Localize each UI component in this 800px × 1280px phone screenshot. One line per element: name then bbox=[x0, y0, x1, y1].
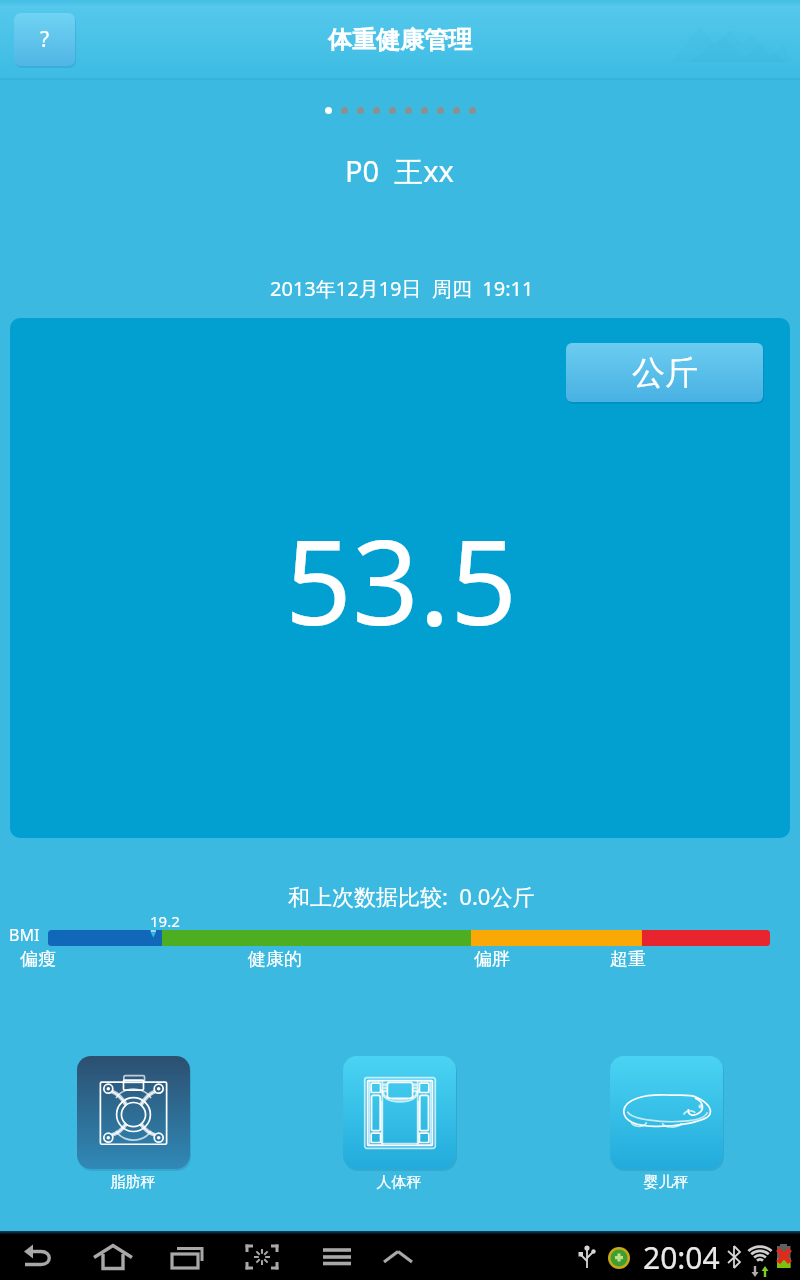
staticText: 健康的 bbox=[248, 948, 302, 971]
button[interactable]: Page 5 bbox=[389, 107, 396, 114]
staticText: BMI bbox=[9, 924, 40, 946]
staticText: 脂肪秤 bbox=[73, 1173, 193, 1192]
staticText: ? bbox=[40, 25, 50, 54]
button[interactable]: Page 3 bbox=[357, 107, 364, 114]
button[interactable]: Help bbox=[14, 13, 75, 66]
button[interactable]: Switch weight unit bbox=[566, 343, 763, 402]
staticText: 公斤 bbox=[632, 352, 698, 394]
staticText: 偏瘦 bbox=[20, 948, 56, 971]
staticText: 超重 bbox=[610, 948, 646, 971]
button[interactable]: Page 2 bbox=[341, 107, 348, 114]
staticText: 偏胖 bbox=[474, 948, 510, 971]
staticText: 53.5 bbox=[285, 500, 518, 659]
button[interactable]: Back bbox=[17, 1234, 61, 1280]
staticText: 2013年12月19日 周四 19:11 bbox=[270, 275, 534, 302]
button[interactable]: Screenshot bbox=[240, 1234, 284, 1280]
button[interactable]: Page 10 bbox=[469, 107, 476, 114]
button[interactable]: 脂肪秤 bbox=[73, 1056, 193, 1192]
button[interactable]: Page 4 bbox=[373, 107, 380, 114]
staticText: 19.2 bbox=[150, 911, 180, 931]
staticText: 婴儿秤 bbox=[606, 1173, 726, 1192]
button[interactable]: Page 7 bbox=[421, 107, 428, 114]
button[interactable]: Recents bbox=[164, 1234, 208, 1280]
button[interactable]: Page 8 bbox=[437, 107, 444, 114]
staticText: P0 王xx bbox=[345, 151, 454, 191]
button[interactable]: Home bbox=[91, 1234, 135, 1280]
staticText: 20:04 bbox=[643, 1237, 720, 1278]
button[interactable]: 人体秤 bbox=[339, 1056, 459, 1192]
button[interactable]: Hide navigation bbox=[376, 1234, 420, 1280]
button[interactable]: Page 9 bbox=[453, 107, 460, 114]
button[interactable]: 婴儿秤 bbox=[606, 1056, 726, 1192]
button[interactable]: Page 6 bbox=[405, 107, 412, 114]
button[interactable]: Menu bbox=[315, 1234, 359, 1280]
staticText: 体重健康管理 bbox=[328, 25, 472, 55]
staticText: 人体秤 bbox=[339, 1173, 459, 1192]
button[interactable]: Page 1 bbox=[325, 107, 332, 114]
staticText: 和上次数据比较: 0.0公斤 bbox=[288, 881, 535, 911]
